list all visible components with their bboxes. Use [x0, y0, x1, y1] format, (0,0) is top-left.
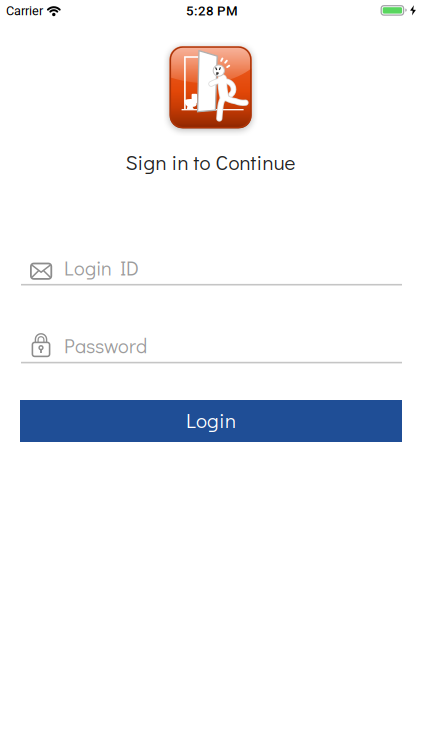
button[interactable]: Login — [20, 400, 402, 442]
staticText: Password — [64, 332, 147, 359]
button[interactable]: Login ID — [21, 245, 402, 286]
staticText: Carrier — [6, 4, 43, 18]
staticText: Login ID — [64, 255, 139, 281]
button[interactable]: Password — [21, 322, 402, 364]
staticText: 5:28 PM — [186, 3, 238, 19]
staticText: Login — [186, 406, 236, 434]
staticText: Sign in to Continue — [125, 148, 295, 175]
